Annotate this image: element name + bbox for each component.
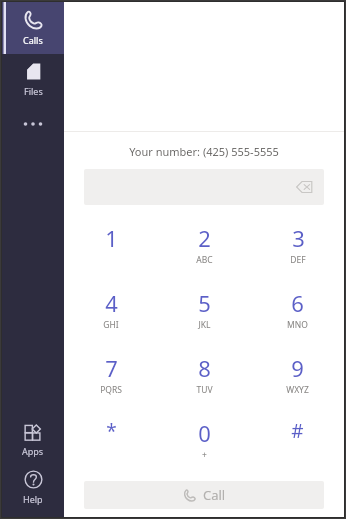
button[interactable]: 5	[158, 286, 251, 351]
button[interactable]: 9	[251, 351, 344, 416]
button[interactable]: 8	[158, 351, 251, 416]
staticText: MNO	[287, 319, 308, 331]
staticText: 9	[291, 353, 304, 383]
staticText: +	[202, 449, 207, 461]
staticText: Calls	[23, 34, 43, 46]
staticText: TUV	[196, 384, 213, 396]
staticText: 0	[198, 418, 211, 448]
button[interactable]: Calls	[2, 2, 64, 54]
staticText: 4	[105, 288, 118, 318]
button[interactable]: 0	[158, 416, 251, 481]
button[interactable]: *	[64, 416, 158, 481]
button[interactable]: Backspace	[294, 177, 314, 197]
staticText: JKL	[198, 319, 211, 331]
staticText: ABC	[196, 254, 213, 266]
staticText: Files	[24, 85, 43, 97]
button[interactable]: Apps	[2, 415, 64, 463]
button[interactable]: 6	[251, 286, 344, 351]
staticText: *	[106, 418, 117, 444]
staticText: DEF	[290, 254, 306, 266]
button[interactable]: Help	[2, 463, 64, 511]
staticText: Your number: (425) 555-5555	[64, 144, 344, 159]
staticText: PQRS	[100, 384, 122, 396]
button[interactable]: 2	[158, 221, 251, 286]
staticText: 3	[292, 223, 305, 253]
button[interactable]: Call	[84, 481, 324, 509]
button[interactable]: Files	[2, 54, 64, 104]
button[interactable]: More options	[2, 104, 64, 144]
staticText: GHI	[103, 319, 119, 331]
staticText: 8	[198, 353, 211, 383]
staticText: Call	[203, 486, 226, 504]
button[interactable]: #	[251, 416, 344, 481]
staticText: WXYZ	[286, 384, 309, 396]
staticText: 1	[105, 223, 118, 253]
staticText: #	[291, 418, 304, 444]
staticText: Apps	[22, 445, 44, 457]
button[interactable]: 4	[64, 286, 158, 351]
button[interactable]: Backspace	[84, 169, 324, 205]
staticText: 7	[105, 353, 118, 383]
staticText: 2	[198, 223, 211, 253]
staticText: 6	[291, 288, 304, 318]
staticText: Help	[23, 493, 43, 505]
staticText: 5	[198, 288, 211, 318]
button[interactable]: 1	[64, 221, 158, 286]
button[interactable]: 7	[64, 351, 158, 416]
button[interactable]: 3	[251, 221, 344, 286]
